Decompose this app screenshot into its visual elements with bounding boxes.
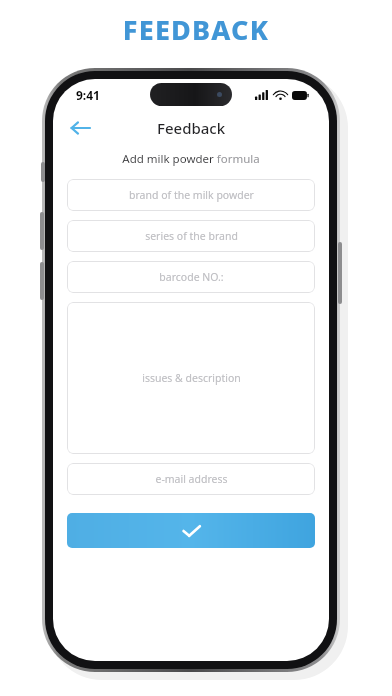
button[interactable]: issues & description xyxy=(67,302,315,454)
button[interactable]: Submit xyxy=(67,513,315,548)
staticText: brand of the milk powder xyxy=(129,188,254,202)
button[interactable]: e-mail address xyxy=(67,463,315,495)
staticText: issues & description xyxy=(142,371,241,385)
button[interactable]: brand of the milk powder xyxy=(67,179,315,211)
staticText: series of the brand xyxy=(145,229,238,243)
button[interactable]: Back xyxy=(65,115,95,141)
staticText: Add milk powder formula xyxy=(53,151,329,167)
staticText: barcode NO.: xyxy=(159,270,224,284)
staticText: FEEDBACK xyxy=(0,11,392,48)
button[interactable]: barcode NO.: xyxy=(67,261,315,293)
staticText: 9:41 xyxy=(76,87,100,103)
staticText: Feedback xyxy=(157,118,226,138)
button[interactable]: series of the brand xyxy=(67,220,315,252)
staticText: e-mail address xyxy=(155,472,228,486)
